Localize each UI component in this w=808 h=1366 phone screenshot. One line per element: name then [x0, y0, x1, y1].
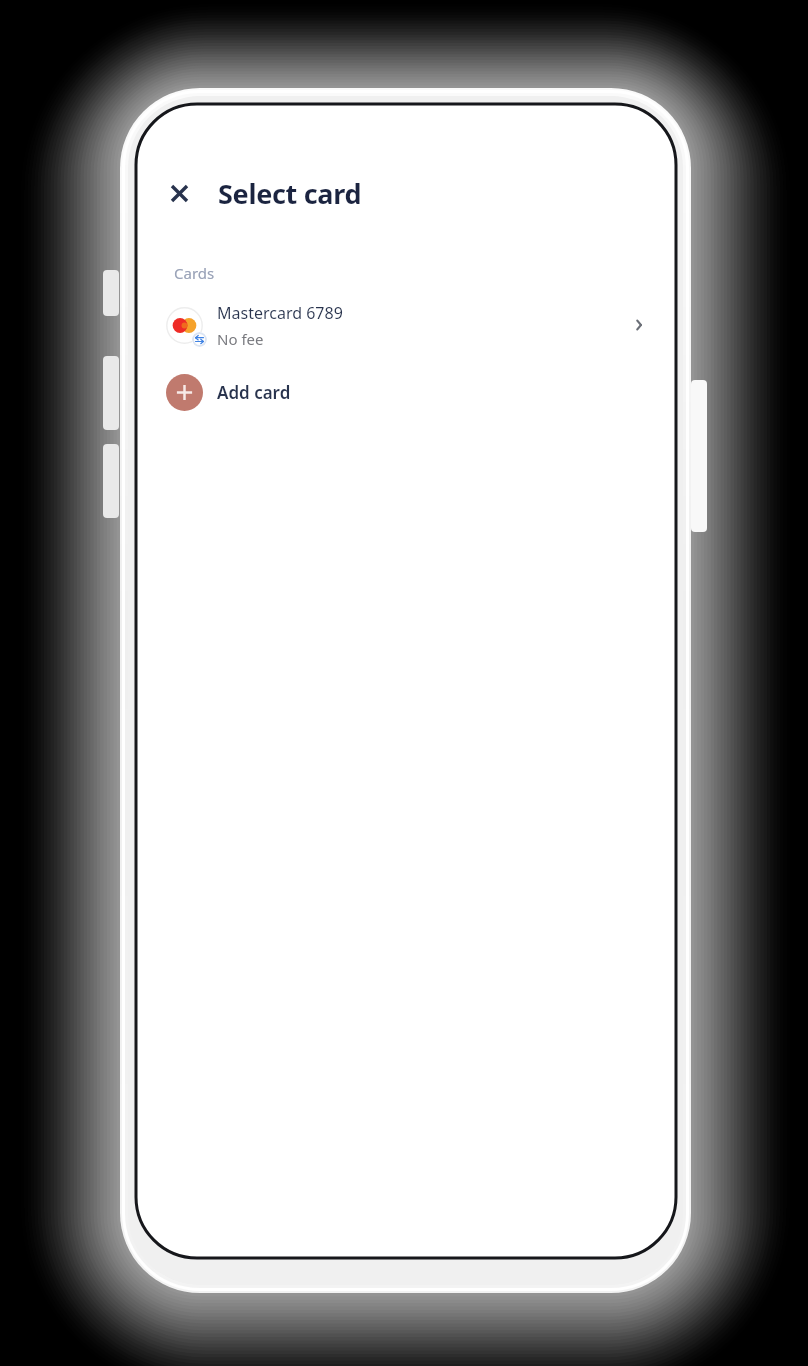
staticText: Add card — [217, 381, 291, 404]
button[interactable]: Add card — [137, 367, 675, 417]
staticText: Select card — [218, 175, 362, 212]
staticText: No fee — [217, 329, 264, 349]
button[interactable]: Mastercard 6789 — [137, 296, 675, 354]
button[interactable]: Close — [157, 171, 201, 215]
staticText: Mastercard 6789 — [217, 302, 343, 324]
staticText: Cards — [174, 263, 215, 283]
